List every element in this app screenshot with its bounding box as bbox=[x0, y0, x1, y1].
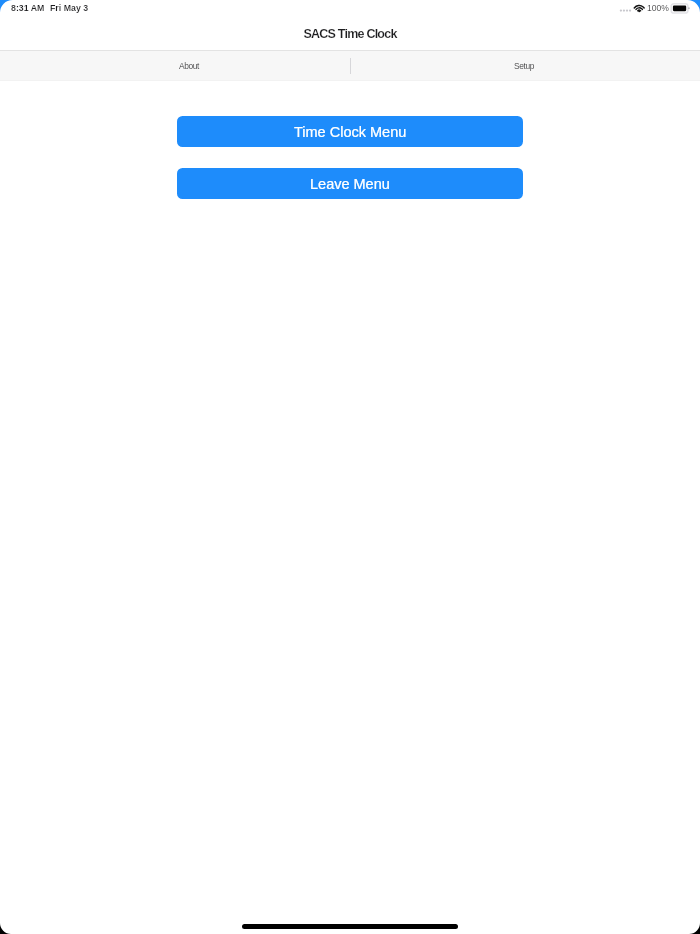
staticText: Setup bbox=[514, 61, 535, 70]
staticText: Time Clock Menu bbox=[294, 124, 407, 140]
staticText: Fri May 3 bbox=[50, 3, 89, 13]
other: Wi-Fi connected, battery full bbox=[616, 0, 698, 22]
staticText: Leave Menu bbox=[310, 176, 390, 192]
button[interactable]: Time Clock Menu bbox=[177, 116, 523, 147]
staticText: About bbox=[179, 61, 200, 70]
staticText: SACS Time Clock bbox=[0, 27, 700, 41]
button[interactable]: Leave Menu bbox=[177, 168, 523, 199]
button[interactable]: Setup bbox=[351, 51, 699, 80]
staticText: 100% bbox=[647, 3, 669, 13]
staticText: 8:31 AM bbox=[11, 3, 45, 13]
button[interactable]: About bbox=[1, 51, 349, 80]
